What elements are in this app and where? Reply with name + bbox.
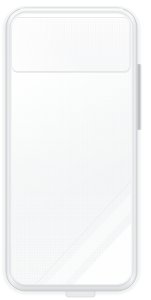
button[interactable]: Device mockup xyxy=(0,0,151,300)
